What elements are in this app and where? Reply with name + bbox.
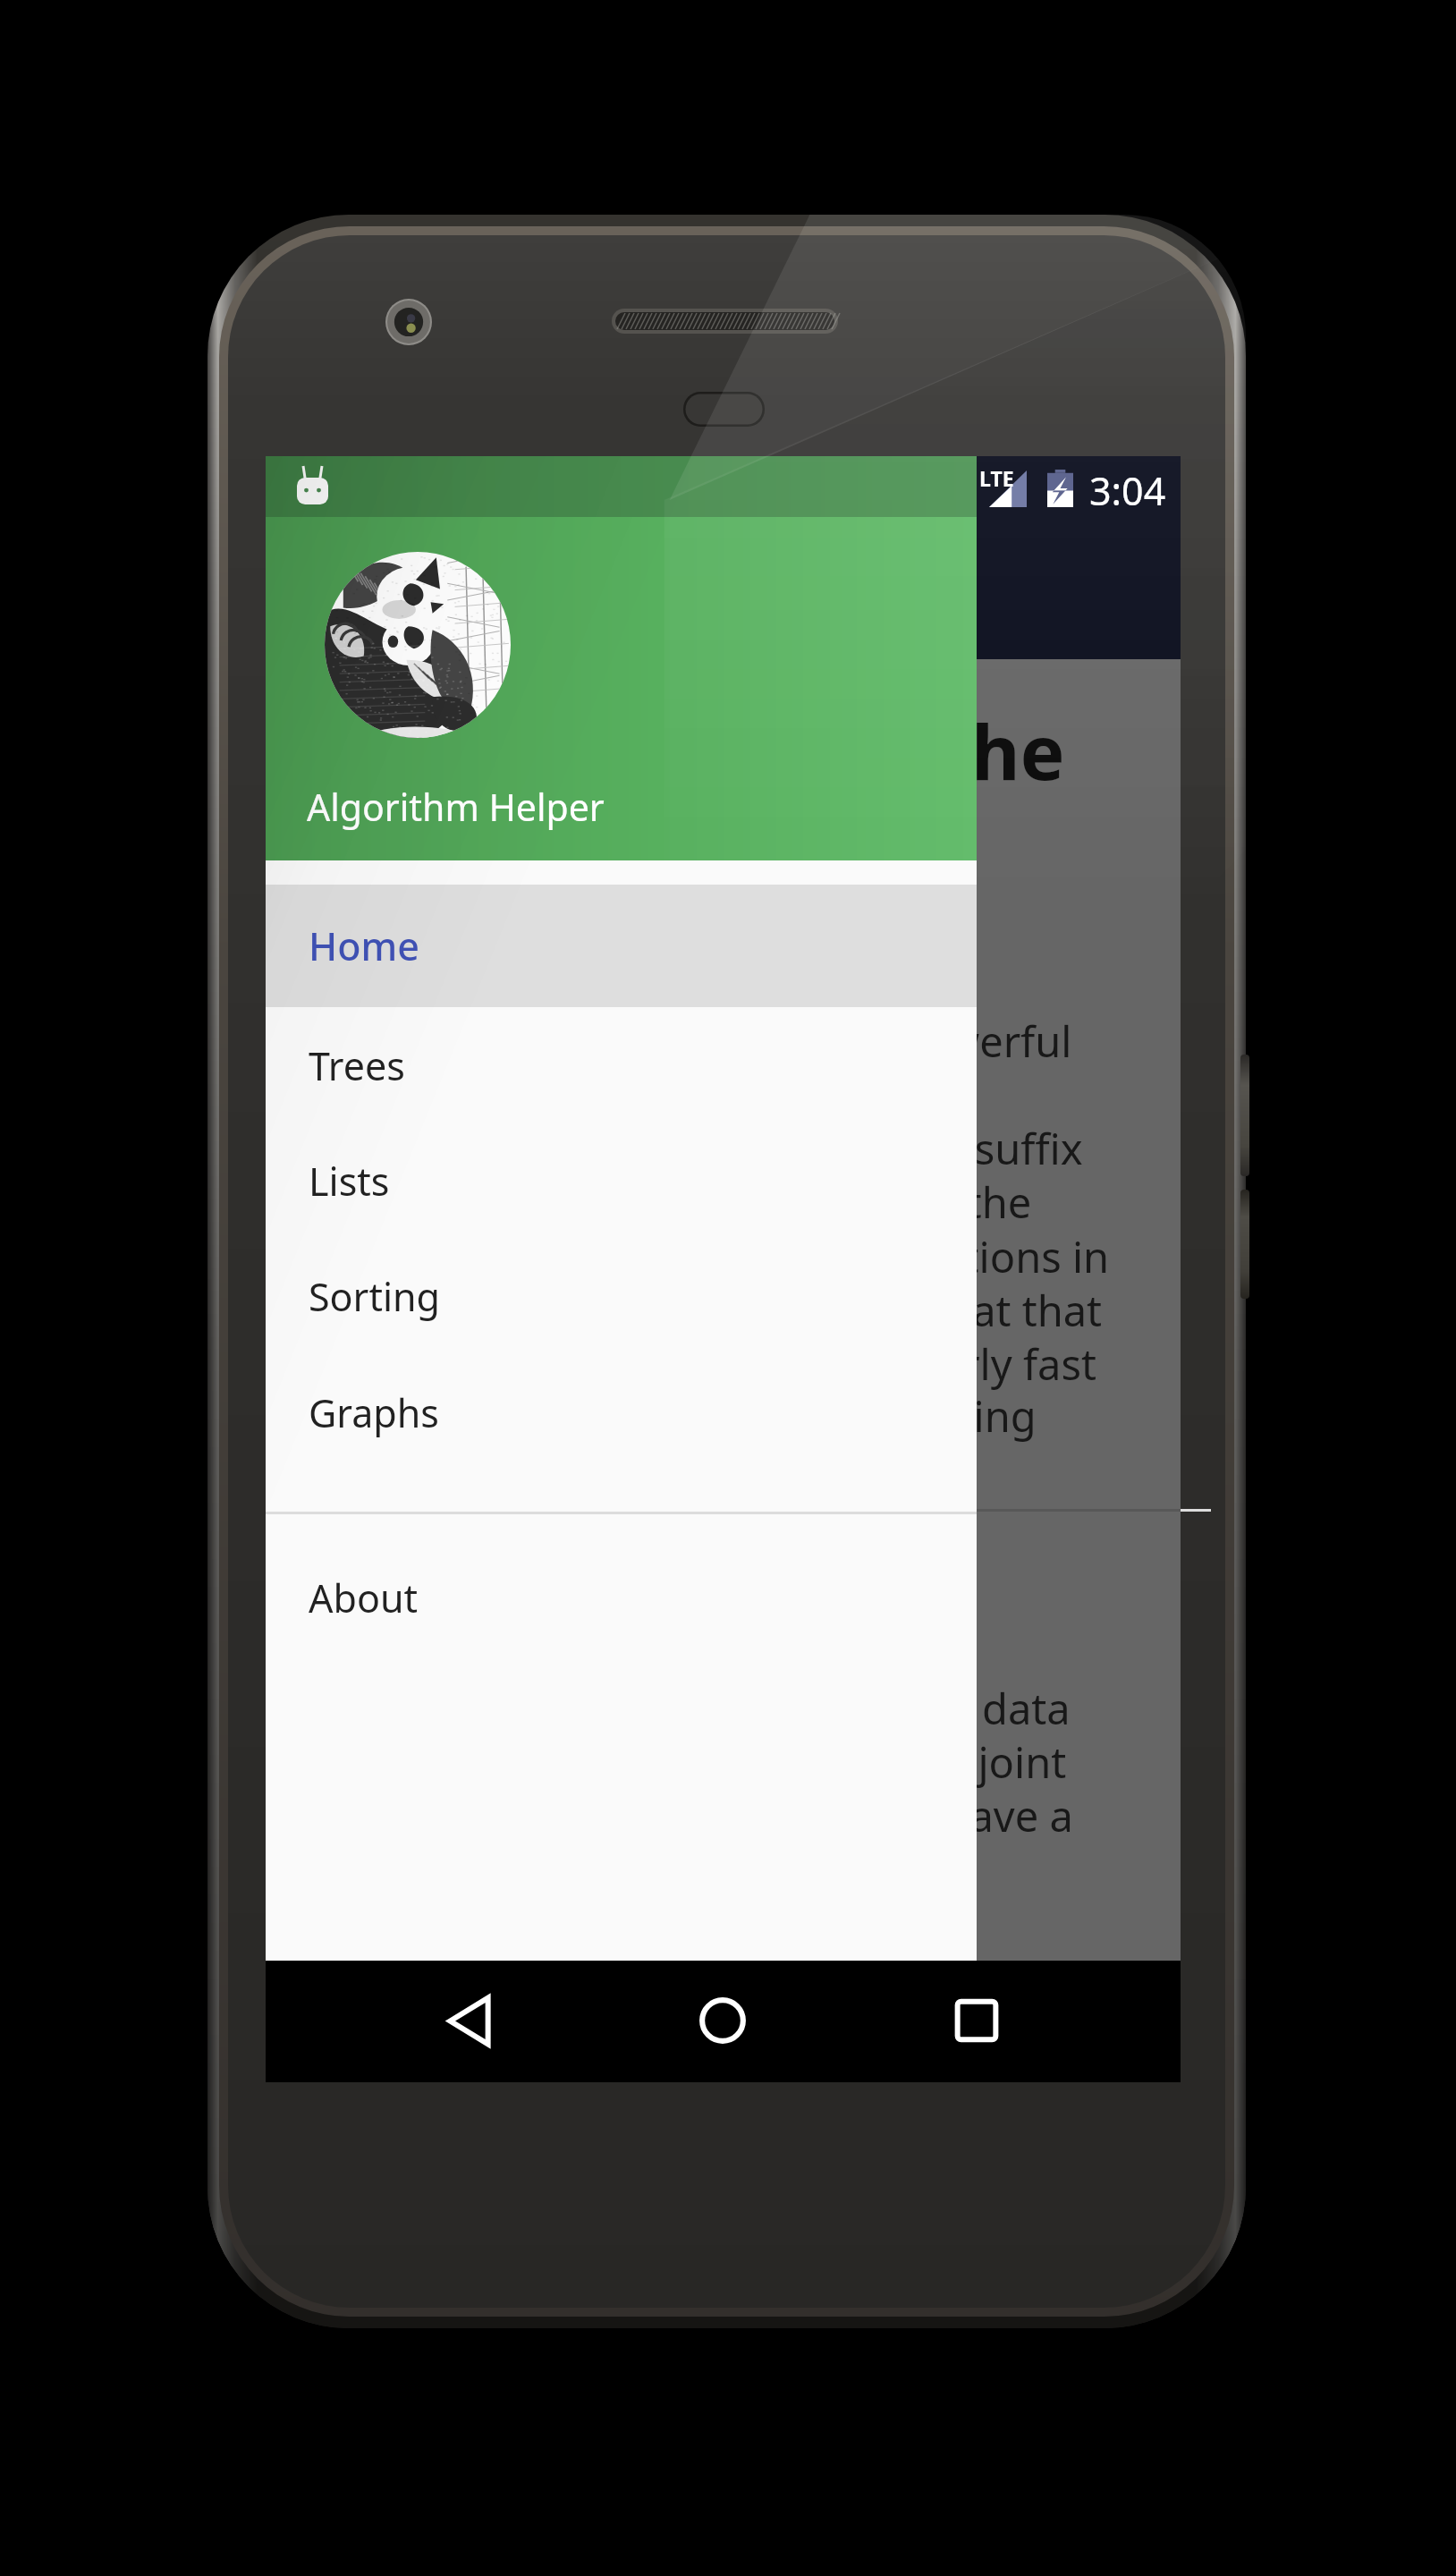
button[interactable]: Home <box>678 1976 767 2065</box>
staticText: Graphs <box>309 1386 439 1439</box>
other: Android version <box>297 466 328 504</box>
staticText: suffix starting positions in <box>597 1228 1110 1285</box>
staticText: Algorithm Helper <box>307 782 605 832</box>
staticText: Home <box>309 919 419 972</box>
button[interactable]: Sorting <box>266 1238 977 1354</box>
staticText: sorted order, so that that <box>612 1282 1103 1339</box>
staticText: Union find (disjoint sets) data <box>493 1680 1071 1737</box>
staticText: array holds all of the <box>627 1174 1032 1231</box>
staticText: one can do a fairly fast <box>650 1335 1096 1393</box>
staticText: Suffix arrays are a very powerful <box>436 1013 1072 1070</box>
button[interactable]: Close navigation drawer <box>266 456 1181 2082</box>
staticText: sets of elements. They have a <box>494 1787 1073 1844</box>
staticText: Lists <box>309 1155 390 1207</box>
staticText: Trees <box>309 1039 405 1092</box>
button[interactable]: Graphs <box>266 1354 977 1470</box>
button[interactable]: About <box>266 1539 977 1657</box>
button[interactable]: Home <box>266 885 977 1007</box>
staticText: Suffix Arrays (the <box>417 699 1065 798</box>
button[interactable]: Algorithm Helper <box>266 517 977 860</box>
button[interactable]: Back <box>425 1976 514 2065</box>
button[interactable]: Recent apps <box>932 1976 1021 2065</box>
button[interactable]: Lists <box>266 1123 977 1238</box>
staticText: binary search over substring <box>474 1387 1037 1445</box>
staticText: Sorting <box>309 1270 441 1323</box>
staticText: structures track disjoint <box>601 1733 1067 1791</box>
button[interactable]: Trees <box>266 1007 977 1123</box>
staticText: LTE <box>979 464 1014 492</box>
staticText: About <box>309 1572 419 1624</box>
staticText: string structure. A suffix <box>608 1120 1083 1177</box>
staticText: 3:04 <box>1089 464 1166 517</box>
